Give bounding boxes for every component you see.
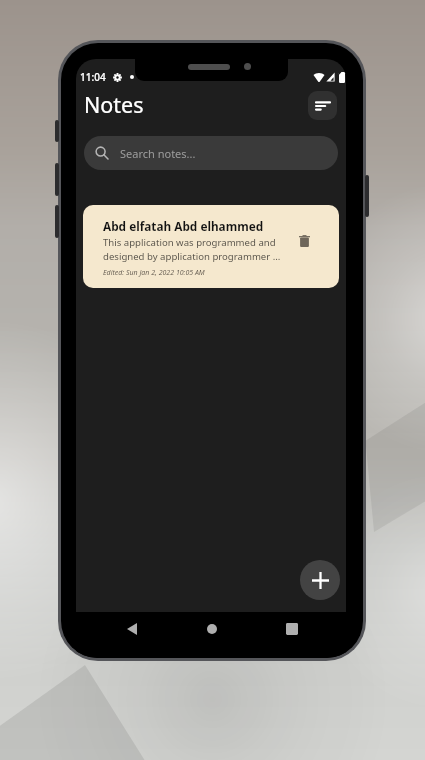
button[interactable]: Add note [300, 560, 340, 600]
button[interactable]: Recents [275, 614, 309, 644]
staticText: Edited: Sun Jan 2, 2022 10:05 AM [103, 268, 205, 278]
staticText: 11:04 [80, 70, 106, 84]
staticText: Notes [84, 90, 144, 119]
button[interactable]: Sort [308, 91, 337, 120]
staticText: Search notes... [120, 146, 196, 161]
button[interactable]: Delete [290, 227, 318, 255]
button[interactable]: Home [195, 614, 229, 644]
staticText: This application was programmed and desi… [103, 236, 283, 262]
button[interactable]: Back [115, 614, 149, 644]
button[interactable]: Abd elfatah Abd elhammed [83, 205, 339, 288]
staticText: Abd elfatah Abd elhammed [103, 218, 264, 234]
button[interactable]: Search notes... [84, 136, 338, 170]
